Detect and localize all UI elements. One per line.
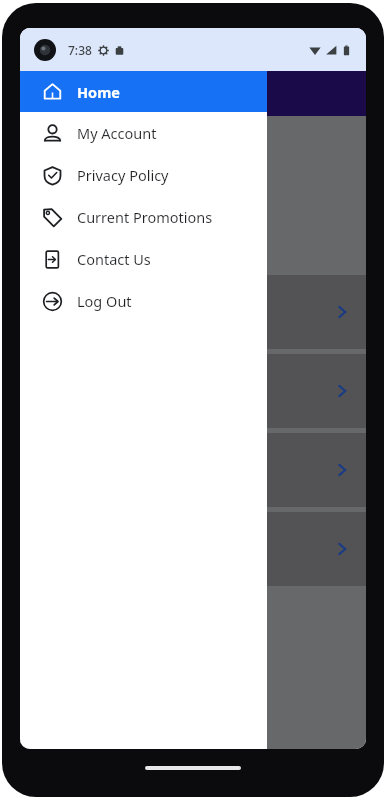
button[interactable] <box>20 433 366 507</box>
staticText: Privacy Policy <box>77 165 169 185</box>
button[interactable] <box>20 275 366 349</box>
button[interactable]: Privacy Policy <box>20 154 267 196</box>
button[interactable]: Log Out <box>20 280 267 322</box>
staticText: Home <box>77 82 120 102</box>
button[interactable] <box>20 354 366 428</box>
button[interactable]: Current Promotions <box>20 196 267 238</box>
staticText: Contact Us <box>77 249 151 269</box>
staticText: FLEET <box>156 143 231 180</box>
staticText: Log Out <box>77 291 132 311</box>
button[interactable] <box>20 512 366 586</box>
button[interactable]: Home <box>20 71 267 112</box>
staticText: Current Promotions <box>77 207 213 227</box>
button[interactable]: My Account <box>20 112 267 154</box>
staticText: WASH <box>154 180 232 217</box>
staticText: 7:38 <box>68 42 92 58</box>
staticText: My Account <box>77 123 157 143</box>
button[interactable]: Contact Us <box>20 238 267 280</box>
